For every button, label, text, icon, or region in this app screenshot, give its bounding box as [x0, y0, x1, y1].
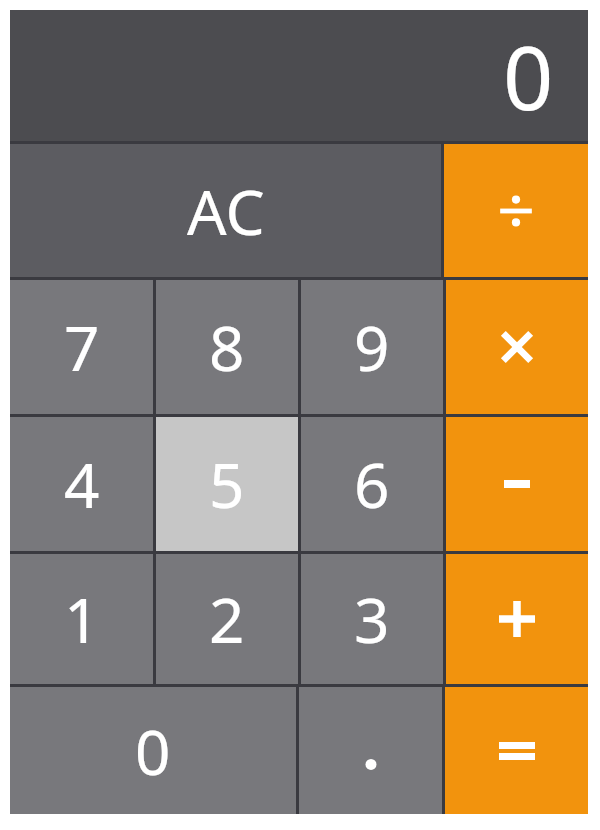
staticText: 9 [354, 305, 390, 389]
staticText: 6 [354, 442, 390, 526]
button[interactable]: 3 [301, 554, 443, 684]
button[interactable]: 6 [301, 417, 443, 551]
button[interactable]: 4 [10, 417, 153, 551]
staticText: 2 [209, 577, 245, 661]
staticText: 3 [354, 577, 390, 661]
staticText: 5 [209, 442, 245, 526]
button[interactable]: 2 [156, 554, 298, 684]
staticText: AC [187, 169, 265, 253]
staticText: 8 [209, 305, 245, 389]
button[interactable]: 1 [10, 554, 153, 684]
staticText: 1 [64, 577, 100, 661]
button[interactable]: Decimal point [299, 687, 442, 814]
button[interactable]: Divide [444, 144, 588, 277]
button[interactable]: 0 [10, 687, 296, 814]
button[interactable]: 8 [156, 280, 298, 414]
button[interactable]: 5 [156, 417, 298, 551]
button[interactable]: Minus [446, 417, 588, 551]
staticText: 0 [503, 16, 554, 136]
button[interactable]: 9 [301, 280, 443, 414]
button[interactable]: Multiply [446, 280, 588, 414]
staticText: 0 [135, 709, 171, 793]
button[interactable]: Plus [446, 554, 588, 684]
staticText: 7 [64, 305, 100, 389]
button[interactable]: AC [10, 144, 441, 277]
button[interactable]: Equals [445, 687, 588, 814]
staticText: 4 [64, 442, 100, 526]
button[interactable]: 7 [10, 280, 153, 414]
